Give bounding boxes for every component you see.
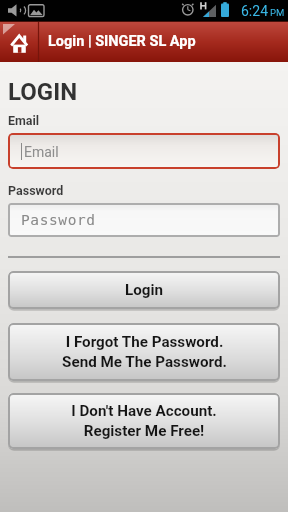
button[interactable]: Email (8, 133, 280, 169)
staticText: Login (125, 281, 164, 299)
staticText: 6:24 (241, 3, 268, 19)
staticText: Login | SINGER SL App (48, 33, 196, 50)
staticText: Email (8, 113, 40, 127)
staticText: I Forgot The Password. Send Me The Passw… (62, 333, 227, 371)
staticText: LOGIN (8, 78, 78, 102)
button[interactable]: I Don't Have Account. Register Me Free! (8, 393, 280, 449)
staticText: Password (21, 212, 96, 229)
button[interactable]: I Forgot The Password. Send Me The Passw… (8, 323, 280, 381)
button[interactable]: Password (8, 203, 280, 237)
staticText: PM (270, 7, 285, 18)
staticText: Password (8, 183, 64, 197)
staticText: I Don't Have Account. Register Me Free! (71, 402, 217, 440)
staticText: Email (24, 144, 59, 160)
button[interactable]: Login (8, 271, 280, 309)
button[interactable] (0, 21, 39, 62)
